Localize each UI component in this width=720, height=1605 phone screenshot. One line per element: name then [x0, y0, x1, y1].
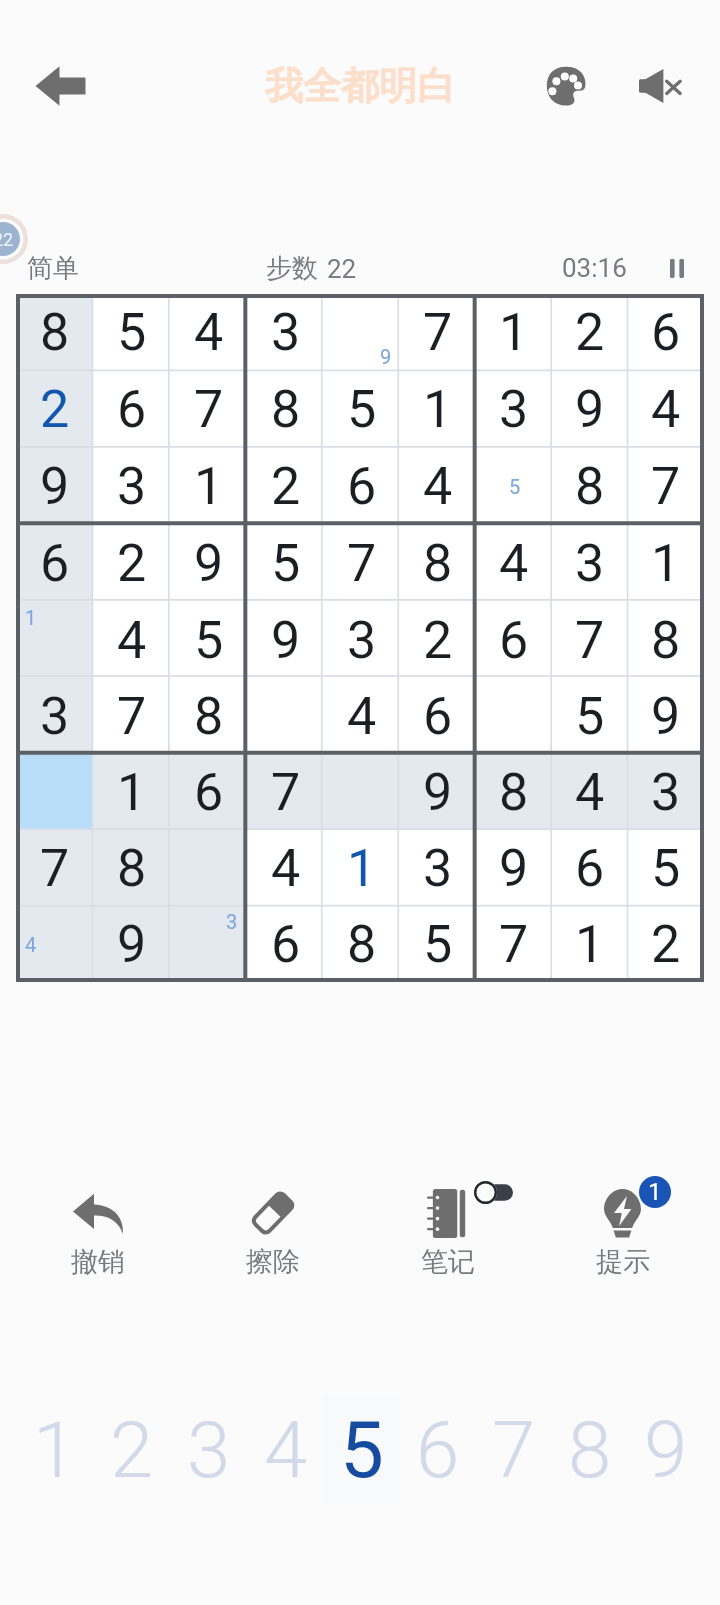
button[interactable]: 5 [324, 1396, 400, 1504]
button[interactable]: 1 [170, 448, 247, 525]
button[interactable]: 7 [93, 678, 170, 754]
button[interactable]: 4 [247, 1396, 324, 1504]
button[interactable]: 5 [552, 678, 628, 754]
button[interactable] [170, 830, 247, 906]
button[interactable]: 7 [400, 294, 476, 371]
button[interactable]: 7 [170, 371, 247, 448]
button[interactable]: 9 [16, 448, 93, 525]
button[interactable]: 7 [552, 602, 628, 678]
button[interactable]: 8 [628, 602, 704, 678]
button[interactable]: 9 [552, 371, 628, 448]
button[interactable]: 6 [552, 830, 628, 906]
button[interactable]: 4 [628, 371, 704, 448]
button[interactable]: 3 [324, 602, 400, 678]
button[interactable]: 5 [247, 525, 324, 602]
button[interactable]: 9 [247, 602, 324, 678]
button[interactable]: 2 [16, 371, 93, 448]
button[interactable]: 3 [247, 294, 324, 371]
button[interactable]: 8 [16, 294, 93, 371]
button[interactable]: 4 [476, 525, 552, 602]
button[interactable]: 3 [170, 906, 247, 982]
button[interactable]: 擦除 [185, 1182, 360, 1322]
button[interactable]: 5 [324, 371, 400, 448]
button[interactable]: 7 [476, 906, 552, 982]
staticText: 3 [423, 838, 453, 899]
button[interactable]: 8 [476, 754, 552, 830]
button[interactable]: 1 [400, 371, 476, 448]
button[interactable]: 8 [552, 448, 628, 525]
button[interactable]: 6 [476, 602, 552, 678]
button[interactable] [16, 754, 93, 830]
button[interactable]: 撤销 [10, 1182, 185, 1322]
button[interactable]: 4 [400, 448, 476, 525]
button[interactable]: 8 [552, 1396, 628, 1504]
button[interactable]: 3 [400, 830, 476, 906]
button[interactable]: 2 [93, 525, 170, 602]
button[interactable] [324, 754, 400, 830]
button[interactable]: 4 [93, 602, 170, 678]
button[interactable]: Pause [659, 250, 695, 286]
button[interactable]: 1 [93, 754, 170, 830]
button[interactable]: Back [24, 50, 96, 122]
button[interactable]: 2 [247, 448, 324, 525]
button[interactable]: 6 [93, 371, 170, 448]
button[interactable]: 笔记 [360, 1182, 535, 1322]
button[interactable]: 8 [324, 906, 400, 982]
button[interactable]: 7 [247, 754, 324, 830]
button[interactable]: 9 [476, 830, 552, 906]
button[interactable]: 9 [400, 754, 476, 830]
button[interactable]: 3 [628, 754, 704, 830]
button[interactable]: 8 [93, 830, 170, 906]
button[interactable]: 1 [535, 1182, 710, 1322]
button[interactable]: 6 [400, 678, 476, 754]
button[interactable]: 9 [324, 294, 400, 371]
button[interactable]: 6 [247, 906, 324, 982]
button[interactable]: 8 [170, 678, 247, 754]
button[interactable]: Mute [628, 54, 692, 118]
button[interactable]: 2 [93, 1396, 170, 1504]
button[interactable]: 8 [247, 371, 324, 448]
button[interactable]: 9 [93, 906, 170, 982]
button[interactable]: 1 [324, 830, 400, 906]
button[interactable]: 2 [400, 602, 476, 678]
button[interactable]: 2 [552, 294, 628, 371]
button[interactable]: 8 [400, 525, 476, 602]
button[interactable]: 4 [16, 906, 93, 982]
button[interactable]: 3 [93, 448, 170, 525]
button[interactable]: 4 [324, 678, 400, 754]
button[interactable]: 5 [400, 906, 476, 982]
button[interactable]: 1 [16, 1396, 93, 1504]
button[interactable]: 6 [628, 294, 704, 371]
button[interactable]: 3 [170, 1396, 247, 1504]
button[interactable]: 9 [170, 525, 247, 602]
button[interactable]: 1 [552, 906, 628, 982]
button[interactable] [476, 678, 552, 754]
button[interactable]: 7 [476, 1396, 552, 1504]
button[interactable]: 9 [628, 1396, 704, 1504]
button[interactable]: 3 [476, 371, 552, 448]
button[interactable]: 1 [476, 294, 552, 371]
button[interactable]: 5 [93, 294, 170, 371]
button[interactable] [247, 678, 324, 754]
button[interactable]: 4 [247, 830, 324, 906]
button[interactable]: 6 [16, 525, 93, 602]
button[interactable]: 2 [628, 906, 704, 982]
staticText: 7 [271, 762, 301, 823]
button[interactable]: 3 [552, 525, 628, 602]
button[interactable]: 6 [170, 754, 247, 830]
button[interactable]: 7 [628, 448, 704, 525]
button[interactable]: 5 [476, 448, 552, 525]
button[interactable]: 5 [628, 830, 704, 906]
button[interactable]: 9 [628, 678, 704, 754]
button[interactable]: 3 [16, 678, 93, 754]
button[interactable]: 4 [170, 294, 247, 371]
button[interactable]: 6 [400, 1396, 476, 1504]
button[interactable]: Theme [534, 54, 598, 118]
button[interactable]: 5 [170, 602, 247, 678]
button[interactable]: 7 [16, 830, 93, 906]
button[interactable]: 6 [324, 448, 400, 525]
button[interactable]: 1 [628, 525, 704, 602]
button[interactable]: 4 [552, 754, 628, 830]
button[interactable]: 1 [16, 602, 93, 678]
button[interactable]: 7 [324, 525, 400, 602]
